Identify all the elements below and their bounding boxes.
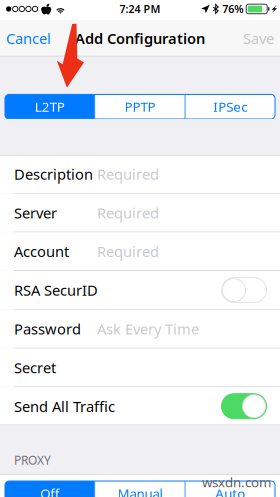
staticText: PROXY	[14, 452, 51, 468]
staticText: Account	[14, 242, 69, 261]
staticText: Save	[243, 28, 274, 48]
staticText: Required	[97, 203, 159, 222]
button[interactable]: Manual	[95, 481, 185, 497]
staticText: Add Configuration	[75, 28, 205, 48]
staticText: Server	[14, 203, 57, 222]
staticText: Description	[14, 164, 93, 184]
staticText: Required	[97, 242, 159, 261]
button[interactable]: Secret	[0, 348, 280, 386]
button[interactable]: Password	[0, 310, 280, 348]
button[interactable]: Off	[5, 481, 94, 497]
button[interactable]: Description	[0, 155, 280, 193]
staticText: Auto	[215, 484, 245, 497]
button[interactable]: IPSec	[186, 94, 275, 119]
button[interactable]: Auto	[186, 481, 275, 497]
button[interactable]: Account	[0, 232, 280, 270]
button[interactable]: RSA SecurID	[0, 271, 280, 309]
staticText: Required	[97, 164, 159, 184]
staticText: Secret	[14, 358, 56, 377]
button[interactable]: L2TP	[5, 94, 94, 119]
staticText: PPTP	[124, 98, 155, 115]
staticText: RSA SecurID	[14, 280, 98, 300]
staticText: IPSec	[213, 98, 247, 115]
button[interactable]: Off	[221, 278, 266, 303]
button[interactable]: Server	[0, 194, 280, 232]
staticText: Password	[14, 319, 81, 339]
button[interactable]: PPTP	[95, 94, 185, 119]
staticText: Cancel	[6, 28, 51, 48]
staticText: wsxdn.com	[202, 473, 271, 491]
staticText: L2TP	[35, 98, 65, 115]
staticText: Ask Every Time	[97, 319, 199, 339]
staticText: Manual	[117, 484, 162, 497]
staticText: Send All Traffic	[14, 396, 115, 416]
button[interactable]: On	[221, 394, 266, 419]
button[interactable]: Cancel	[0, 20, 63, 56]
button[interactable]: Save	[231, 20, 280, 56]
staticText: Off	[40, 484, 59, 497]
staticText: 76%	[222, 2, 243, 16]
staticText: 7:24 PM	[119, 2, 160, 16]
button[interactable]: Send All Traffic	[0, 387, 280, 425]
